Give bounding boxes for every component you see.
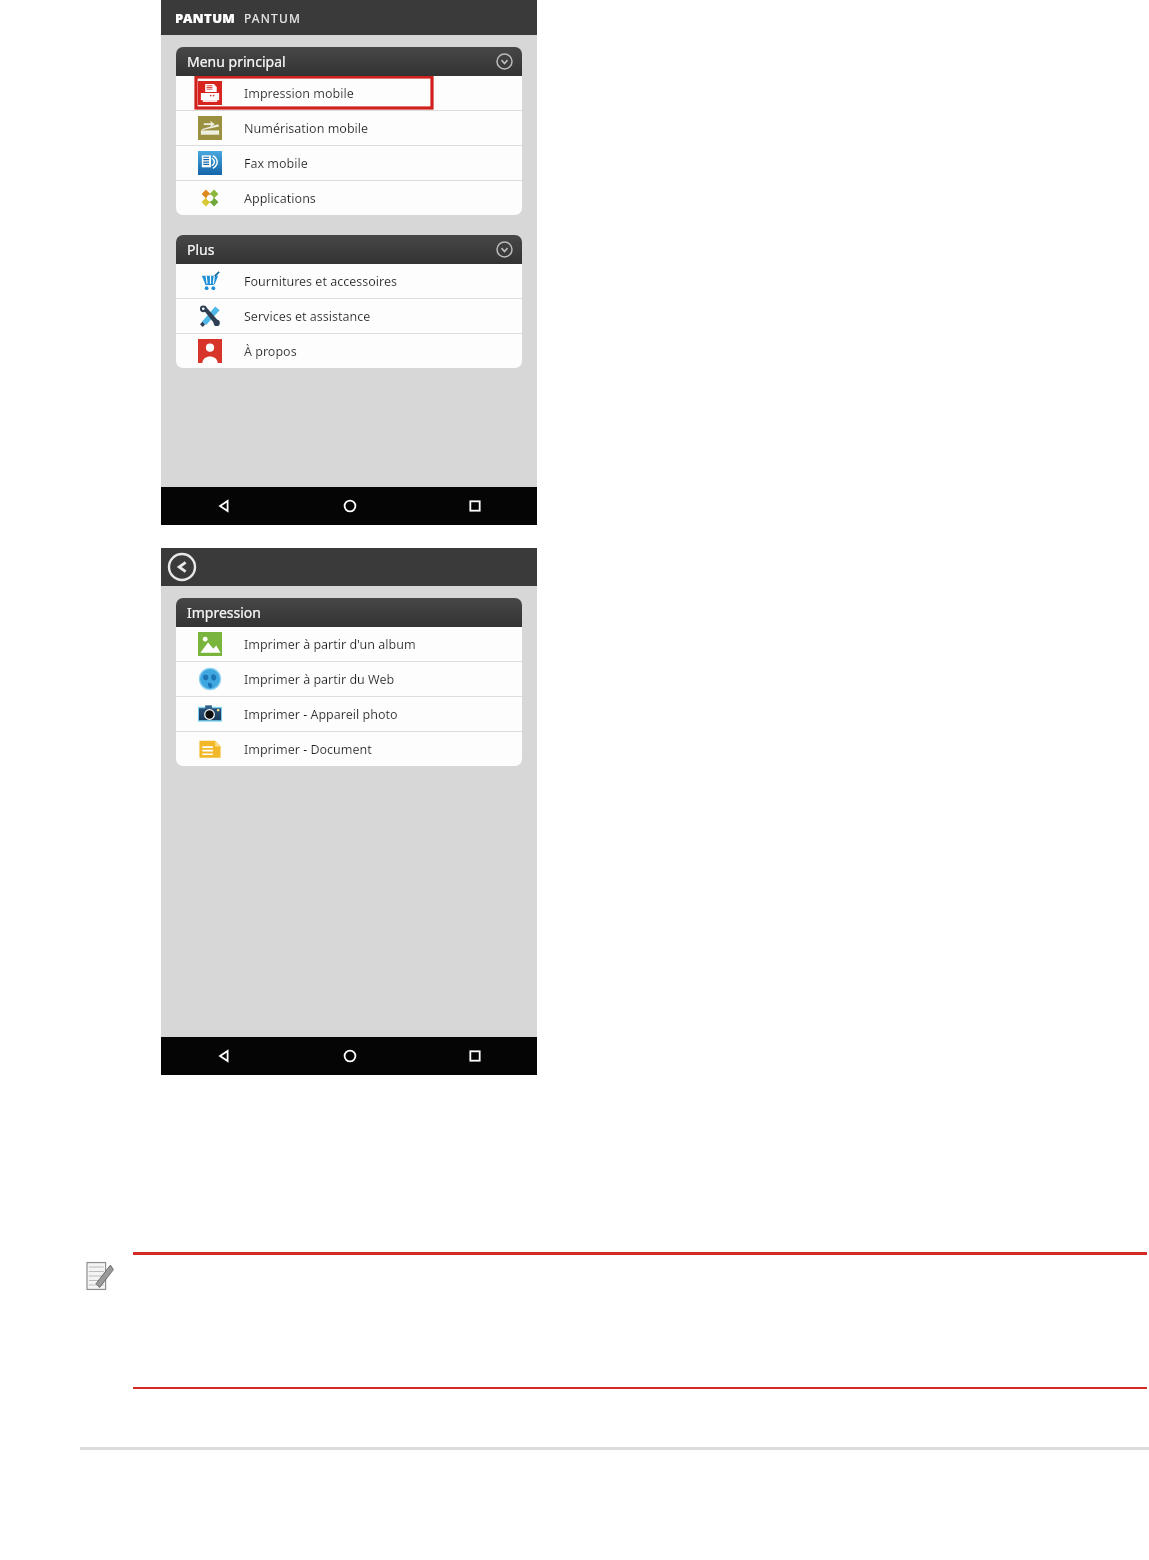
- staticText: Imprimer à partir du Web: [244, 671, 395, 688]
- button[interactable]: Applications: [176, 181, 522, 215]
- staticText: PANTUM: [244, 10, 301, 26]
- staticText: Fax mobile: [244, 155, 308, 172]
- staticText: Services et assistance: [244, 308, 371, 325]
- button[interactable]: Numérisation mobile: [176, 111, 522, 145]
- staticText: Imprimer à partir d'un album: [244, 636, 416, 653]
- button[interactable]: Impression mobile: [176, 76, 522, 110]
- staticText: Impression mobile: [244, 85, 354, 102]
- button[interactable]: Back: [161, 1037, 287, 1075]
- staticText: Imprimer - Appareil photo: [244, 706, 398, 723]
- staticText: Plus: [187, 240, 215, 259]
- button[interactable]: Recents: [412, 1037, 537, 1075]
- staticText: À propos: [244, 343, 297, 360]
- button[interactable]: Imprimer à partir du Web: [176, 662, 522, 696]
- button[interactable]: Home: [287, 1037, 412, 1075]
- staticText: Fournitures et accessoires: [244, 273, 397, 290]
- button[interactable]: Imprimer - Document: [176, 732, 522, 766]
- button[interactable]: Imprimer - Appareil photo: [176, 697, 522, 731]
- staticText: Imprimer - Document: [244, 741, 372, 758]
- button[interactable]: Fax mobile: [176, 146, 522, 180]
- button[interactable]: Imprimer à partir d'un album: [176, 627, 522, 661]
- button[interactable]: Home: [287, 487, 412, 525]
- button[interactable]: Back: [167, 552, 197, 582]
- button[interactable]: Impression: [176, 598, 522, 627]
- button[interactable]: Fournitures et accessoires: [176, 264, 522, 298]
- staticText: Numérisation mobile: [244, 120, 369, 137]
- button[interactable]: Menu principal: [176, 47, 522, 76]
- button[interactable]: Recents: [412, 487, 537, 525]
- staticText: PANTUM: [175, 9, 236, 27]
- staticText: Impression: [187, 603, 261, 622]
- button[interactable]: Back: [161, 487, 287, 525]
- button[interactable]: À propos: [176, 334, 522, 368]
- button[interactable]: Services et assistance: [176, 299, 522, 333]
- staticText: Applications: [244, 190, 316, 207]
- staticText: Menu principal: [187, 52, 286, 71]
- button[interactable]: Plus: [176, 235, 522, 264]
